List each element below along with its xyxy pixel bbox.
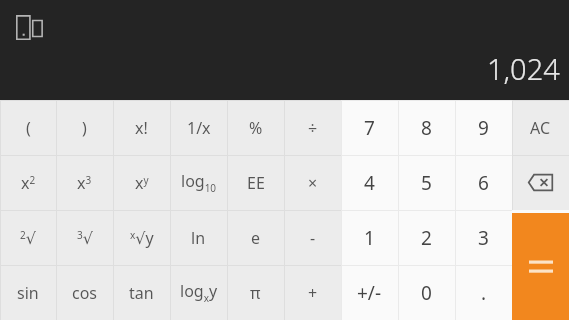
button[interactable]: 7 xyxy=(341,100,398,155)
staticText: 7 xyxy=(364,115,375,141)
staticText: . xyxy=(481,280,487,306)
button[interactable]: x√y xyxy=(113,210,170,265)
button[interactable]: 5 xyxy=(398,155,455,210)
button[interactable]: sin xyxy=(0,265,56,320)
button[interactable]: 1 xyxy=(341,210,398,265)
staticText: 1,024 xyxy=(487,49,560,88)
staticText: 0 xyxy=(421,280,432,306)
button[interactable]: 4 xyxy=(341,155,398,210)
button[interactable]: ln xyxy=(170,210,227,265)
staticText: 6 xyxy=(478,170,489,196)
button[interactable]: - xyxy=(284,210,341,265)
staticText: x√y xyxy=(130,227,154,249)
staticText: AC xyxy=(530,117,551,139)
staticText: x! xyxy=(135,117,148,139)
button[interactable]: ) xyxy=(56,100,113,155)
button[interactable]: ÷ xyxy=(284,100,341,155)
button[interactable]: % xyxy=(227,100,284,155)
button[interactable]: e xyxy=(227,210,284,265)
staticText: × xyxy=(308,172,318,194)
button[interactable]: xy xyxy=(113,155,170,210)
staticText: 5 xyxy=(421,170,432,196)
staticText: EE xyxy=(247,172,265,194)
staticText: - xyxy=(310,227,316,249)
button[interactable]: 3√ xyxy=(56,210,113,265)
staticText: 9 xyxy=(478,115,489,141)
button[interactable]: × xyxy=(284,155,341,210)
button[interactable]: logxy xyxy=(170,265,227,320)
button[interactable]: 2 xyxy=(398,210,455,265)
button[interactable]: tan xyxy=(113,265,170,320)
staticText: 1 xyxy=(364,225,375,251)
staticText: ( xyxy=(26,117,31,139)
button[interactable]: 1/x xyxy=(170,100,227,155)
button[interactable]: 0 xyxy=(398,265,455,320)
button[interactable]: +/- xyxy=(341,265,398,320)
staticText: 1/x xyxy=(187,117,211,139)
staticText: 3√ xyxy=(77,228,93,248)
button[interactable]: log10 xyxy=(170,155,227,210)
staticText: cos xyxy=(72,282,98,304)
button[interactable]: x2 xyxy=(0,155,56,210)
staticText: x2 xyxy=(21,172,36,194)
staticText: 4 xyxy=(364,170,375,196)
staticText: +/- xyxy=(357,280,382,306)
button[interactable]: EE xyxy=(227,155,284,210)
staticText: e xyxy=(251,227,261,249)
staticText: tan xyxy=(129,282,154,304)
button[interactable]: 6 xyxy=(455,155,512,210)
staticText: 2 xyxy=(421,225,432,251)
staticText: 2√ xyxy=(20,228,36,248)
button[interactable]: + xyxy=(284,265,341,320)
staticText: log10 xyxy=(181,170,217,195)
button[interactable]: AC xyxy=(512,100,569,155)
staticText: ÷ xyxy=(308,117,318,139)
button[interactable]: 3 xyxy=(455,210,512,265)
button[interactable]: 2√ xyxy=(0,210,56,265)
button[interactable]: . xyxy=(455,265,512,320)
staticText: 8 xyxy=(421,115,432,141)
staticText: xy xyxy=(135,172,149,194)
button[interactable]: Multi window xyxy=(8,8,50,50)
staticText: % xyxy=(249,117,263,139)
button[interactable]: cos xyxy=(56,265,113,320)
button[interactable]: Equals xyxy=(512,213,569,320)
button[interactable]: Backspace xyxy=(512,155,569,210)
staticText: ) xyxy=(82,117,87,139)
button[interactable]: 9 xyxy=(455,100,512,155)
staticText: π xyxy=(250,282,261,304)
button[interactable]: π xyxy=(227,265,284,320)
button[interactable]: x! xyxy=(113,100,170,155)
staticText: ln xyxy=(191,227,206,249)
button[interactable]: x3 xyxy=(56,155,113,210)
staticText: sin xyxy=(17,282,39,304)
button[interactable]: ( xyxy=(0,100,56,155)
button[interactable]: 8 xyxy=(398,100,455,155)
staticText: + xyxy=(308,282,318,304)
staticText: x3 xyxy=(77,172,92,194)
staticText: 3 xyxy=(478,225,489,251)
staticText: logxy xyxy=(180,280,218,305)
